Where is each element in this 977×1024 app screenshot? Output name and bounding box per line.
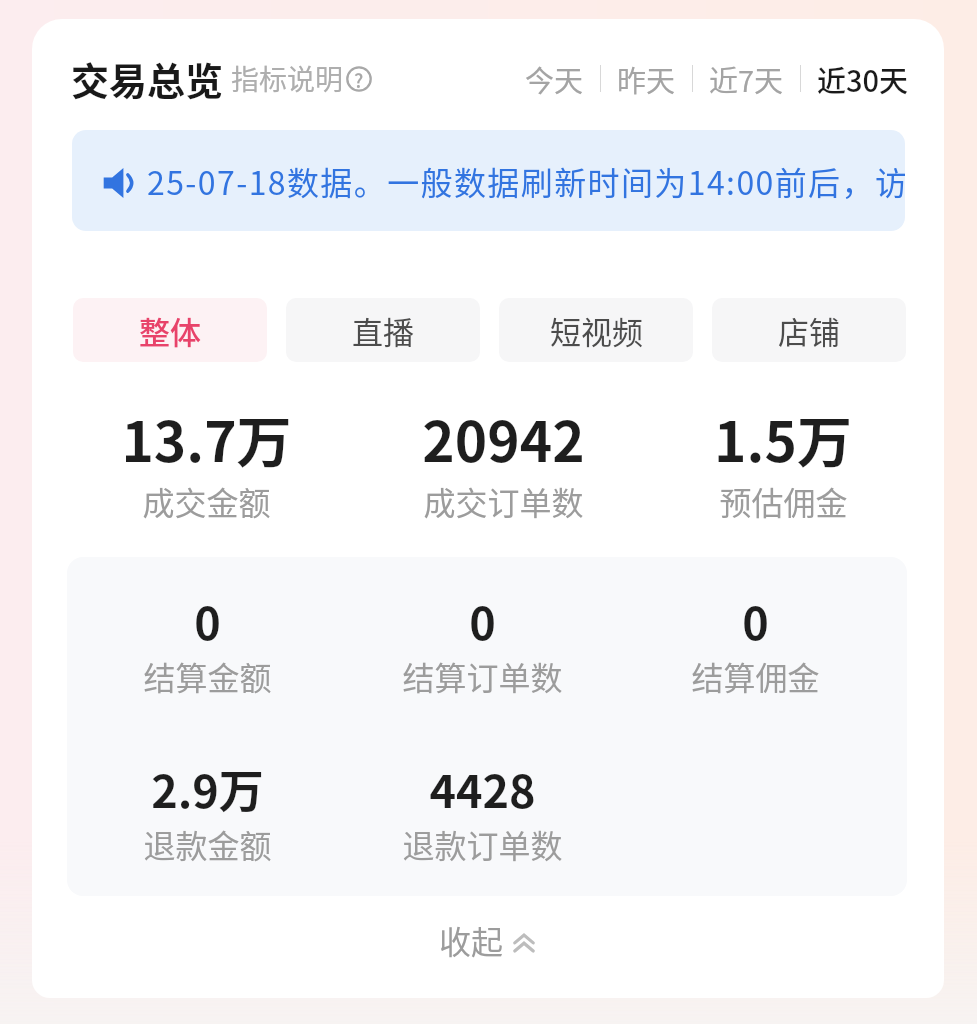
button[interactable]: 今天 [525, 52, 584, 106]
staticText: 2.9万 [151, 756, 264, 821]
staticText: 13.7万 [121, 398, 292, 478]
staticText: 短视频 [550, 308, 643, 353]
staticText: ? [354, 66, 364, 92]
button[interactable]: 短视频 [499, 298, 693, 362]
staticText: 结算佣金 [691, 653, 820, 699]
staticText: 整体 [139, 308, 201, 353]
staticText: 成交金额 [142, 478, 271, 524]
button[interactable]: 昨天 [617, 52, 676, 106]
staticText: 交易总览 [71, 51, 224, 106]
button[interactable]: 直播 [286, 298, 480, 362]
staticText: 店铺 [778, 308, 840, 353]
other: Announcement [103, 166, 137, 200]
staticText: 预估佣金 [719, 478, 848, 524]
button[interactable]: 整体 [73, 298, 267, 362]
button[interactable]: 收起 [32, 907, 944, 973]
staticText: 0 [742, 588, 769, 653]
button[interactable]: 近30天 [817, 52, 909, 106]
button[interactable]: 店铺 [712, 298, 906, 362]
staticText: 退款订单数 [402, 821, 563, 867]
staticText: 25-07-18数据。一般数据刷新时间为14:00前后，访问 [147, 158, 905, 204]
staticText: 结算订单数 [402, 653, 563, 699]
staticText: 成交订单数 [423, 478, 584, 524]
button[interactable]: 指标说明 [231, 58, 372, 99]
staticText: 昨天 [617, 58, 676, 100]
other: Metric help [346, 66, 372, 92]
staticText: 直播 [352, 308, 414, 353]
staticText: 近30天 [817, 58, 909, 100]
button[interactable]: Announcement [72, 130, 905, 231]
staticText: 20942 [422, 398, 585, 478]
staticText: 退款金额 [143, 821, 272, 867]
staticText: 4428 [429, 756, 536, 821]
button[interactable]: 近7天 [709, 52, 784, 106]
staticText: 0 [469, 588, 496, 653]
staticText: 近7天 [709, 58, 784, 100]
staticText: 今天 [525, 58, 584, 100]
staticText: 1.5万 [714, 398, 852, 478]
staticText: 收起 [439, 917, 504, 963]
staticText: 指标说明 [231, 58, 344, 99]
staticText: 结算金额 [143, 653, 272, 699]
staticText: 0 [194, 588, 221, 653]
